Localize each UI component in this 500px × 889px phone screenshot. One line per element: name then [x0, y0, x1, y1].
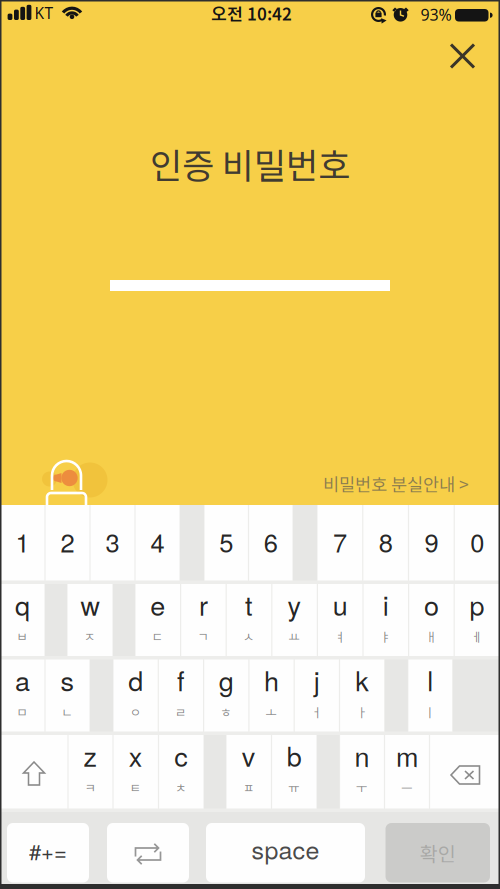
staticText: n [354, 736, 369, 775]
button[interactable]: n [339, 735, 384, 808]
button[interactable]: Switch keyboard [107, 823, 189, 882]
staticText: o [424, 585, 439, 624]
staticText: g [219, 660, 234, 699]
button[interactable]: f [158, 659, 204, 731]
staticText: 4 [150, 523, 164, 560]
button[interactable]: 4 [135, 505, 180, 580]
staticText: ㅇ [130, 703, 142, 721]
staticText: z [83, 736, 97, 775]
staticText: b [287, 736, 302, 775]
staticText: j [314, 660, 320, 699]
button[interactable]: 8 [363, 505, 409, 580]
staticText: ㅜ [356, 778, 368, 796]
staticText: ㅌ [130, 778, 142, 796]
staticText: ㅂ [16, 627, 28, 645]
button[interactable]: l [408, 659, 453, 731]
staticText: 7 [333, 523, 347, 560]
button[interactable]: j [294, 659, 339, 731]
button[interactable]: s [45, 659, 90, 731]
staticText: l [427, 660, 433, 699]
button[interactable]: w [67, 584, 113, 656]
staticText: e [150, 585, 165, 624]
button[interactable]: i [363, 584, 409, 656]
button[interactable]: k [339, 659, 385, 731]
button[interactable]: g [204, 659, 249, 731]
button[interactable]: b [271, 735, 317, 808]
staticText: r [199, 585, 208, 624]
staticText: 9 [424, 523, 438, 560]
staticText: ㅠ [288, 778, 300, 796]
button[interactable]: t [226, 584, 272, 656]
staticText: ㅏ [356, 703, 368, 721]
staticText: 93% [420, 4, 451, 25]
staticText: x [129, 736, 143, 775]
staticText: ㄴ [61, 703, 73, 721]
staticText: 확인 [420, 839, 456, 867]
button[interactable]: d [113, 659, 158, 731]
button[interactable]: 비밀번호 분실안내 > [323, 471, 469, 496]
button[interactable]: #+= [7, 823, 89, 882]
button[interactable]: space [206, 823, 365, 882]
button[interactable]: x [113, 735, 158, 808]
staticText: h [264, 660, 279, 699]
button[interactable]: r [181, 584, 226, 656]
button[interactable]: 1 [0, 505, 45, 580]
staticText: ㄷ [152, 627, 164, 645]
staticText: q [15, 585, 30, 624]
staticText: 오전 10:42 [211, 1, 292, 25]
staticText: 인증 비밀번호 [150, 138, 350, 189]
staticText: p [469, 585, 484, 624]
staticText: f [177, 660, 185, 699]
button[interactable]: z [68, 735, 113, 808]
button[interactable]: h [249, 659, 294, 731]
button[interactable]: 5 [204, 505, 248, 580]
button[interactable]: 확인 [385, 823, 490, 882]
button[interactable]: c [158, 735, 204, 808]
staticText: ㅎ [220, 703, 232, 721]
staticText: 3 [105, 523, 119, 560]
staticText: 6 [264, 523, 278, 560]
staticText: ㅡ [401, 778, 413, 796]
staticText: ㅋ [84, 778, 96, 796]
staticText: m [396, 736, 418, 775]
staticText: w [80, 585, 99, 624]
staticText: a [15, 660, 30, 699]
staticText: ㅑ [380, 627, 392, 645]
staticText: 비밀번호 분실안내 > [323, 471, 469, 496]
button[interactable]: p [454, 584, 500, 656]
button[interactable]: 0 [454, 505, 500, 580]
button[interactable]: a [0, 659, 45, 731]
staticText: space [251, 831, 319, 867]
staticText: 5 [219, 523, 233, 560]
staticText: ㅕ [334, 627, 346, 645]
button[interactable]: u [317, 584, 363, 656]
staticText: u [333, 585, 348, 624]
staticText: ㅐ [425, 627, 437, 645]
button[interactable]: m [384, 735, 429, 808]
button[interactable]: 7 [317, 505, 363, 580]
button[interactable]: v [226, 735, 271, 808]
button[interactable]: 6 [248, 505, 293, 580]
staticText: 8 [379, 523, 393, 560]
staticText: KT [34, 2, 53, 23]
staticText: ㅁ [16, 703, 28, 721]
button[interactable]: e [135, 584, 181, 656]
staticText: c [174, 736, 188, 775]
staticText: i [383, 585, 389, 624]
staticText: s [60, 660, 74, 699]
button[interactable]: 2 [45, 505, 90, 580]
button[interactable]: o [409, 584, 454, 656]
staticText: ㅓ [311, 703, 323, 721]
button[interactable]: y [272, 584, 317, 656]
staticText: y [288, 585, 302, 624]
staticText: d [128, 660, 143, 699]
button[interactable]: Delete [429, 735, 500, 808]
button[interactable]: q [0, 584, 45, 656]
button[interactable]: Close [441, 34, 484, 77]
staticText: ㅅ [243, 627, 255, 645]
button[interactable]: 3 [90, 505, 135, 580]
button[interactable]: Shift [0, 735, 68, 808]
button[interactable]: 9 [408, 505, 454, 580]
staticText: ㅗ [266, 703, 278, 721]
staticText: ㄹ [175, 703, 187, 721]
